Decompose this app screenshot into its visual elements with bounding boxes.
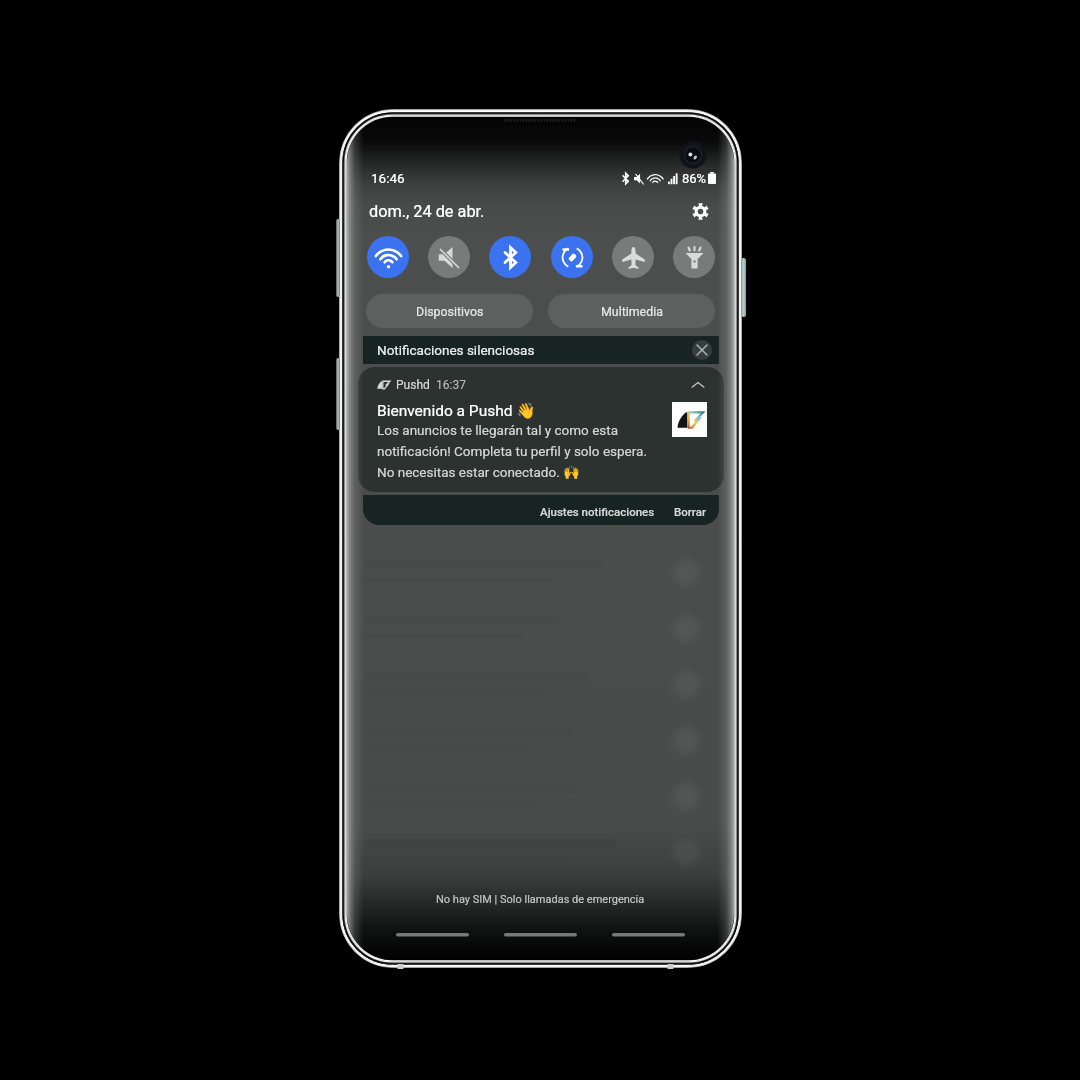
staticText: Multimedia [601,304,663,319]
staticText: No hay SIM | Solo llamadas de emergencia [436,893,645,906]
button[interactable]: Dispositivos [366,294,533,328]
button[interactable]: Sound off [428,236,470,278]
button[interactable]: Dismiss [692,340,712,360]
button[interactable]: Pushd [358,367,724,492]
staticText: Los anuncios te llegarán tal y como esta… [377,422,654,480]
button[interactable]: Collapse [689,376,707,394]
button[interactable]: Flashlight [673,236,715,278]
button[interactable]: Ajustes notificaciones [536,502,659,521]
staticText: Notificaciones silenciosas [377,342,535,358]
staticText: Borrar [674,505,706,518]
staticText: Ajustes notificaciones [540,505,655,518]
button[interactable]: Wi-Fi [367,236,409,278]
button[interactable]: Settings [686,197,714,225]
staticText: 16:46 [371,170,405,186]
button[interactable]: Notificaciones silenciosas [363,336,719,364]
staticText: Dispositivos [416,304,484,319]
staticText: Pushd [396,378,430,392]
button[interactable]: Bluetooth [489,236,531,278]
button[interactable]: Borrar [670,502,710,521]
button[interactable]: Auto rotate [551,236,593,278]
button[interactable]: Airplane mode [612,236,654,278]
staticText: dom., 24 de abr. [369,202,485,221]
staticText: 86% [682,171,707,186]
button[interactable]: Volume up [336,219,340,297]
staticText: Bienvenido a Pushd 👋 [377,402,536,420]
button[interactable]: Multimedia [548,294,715,328]
button[interactable]: Volume down [336,358,340,430]
staticText: 16:37 [436,378,466,392]
button[interactable]: Power [741,258,746,317]
